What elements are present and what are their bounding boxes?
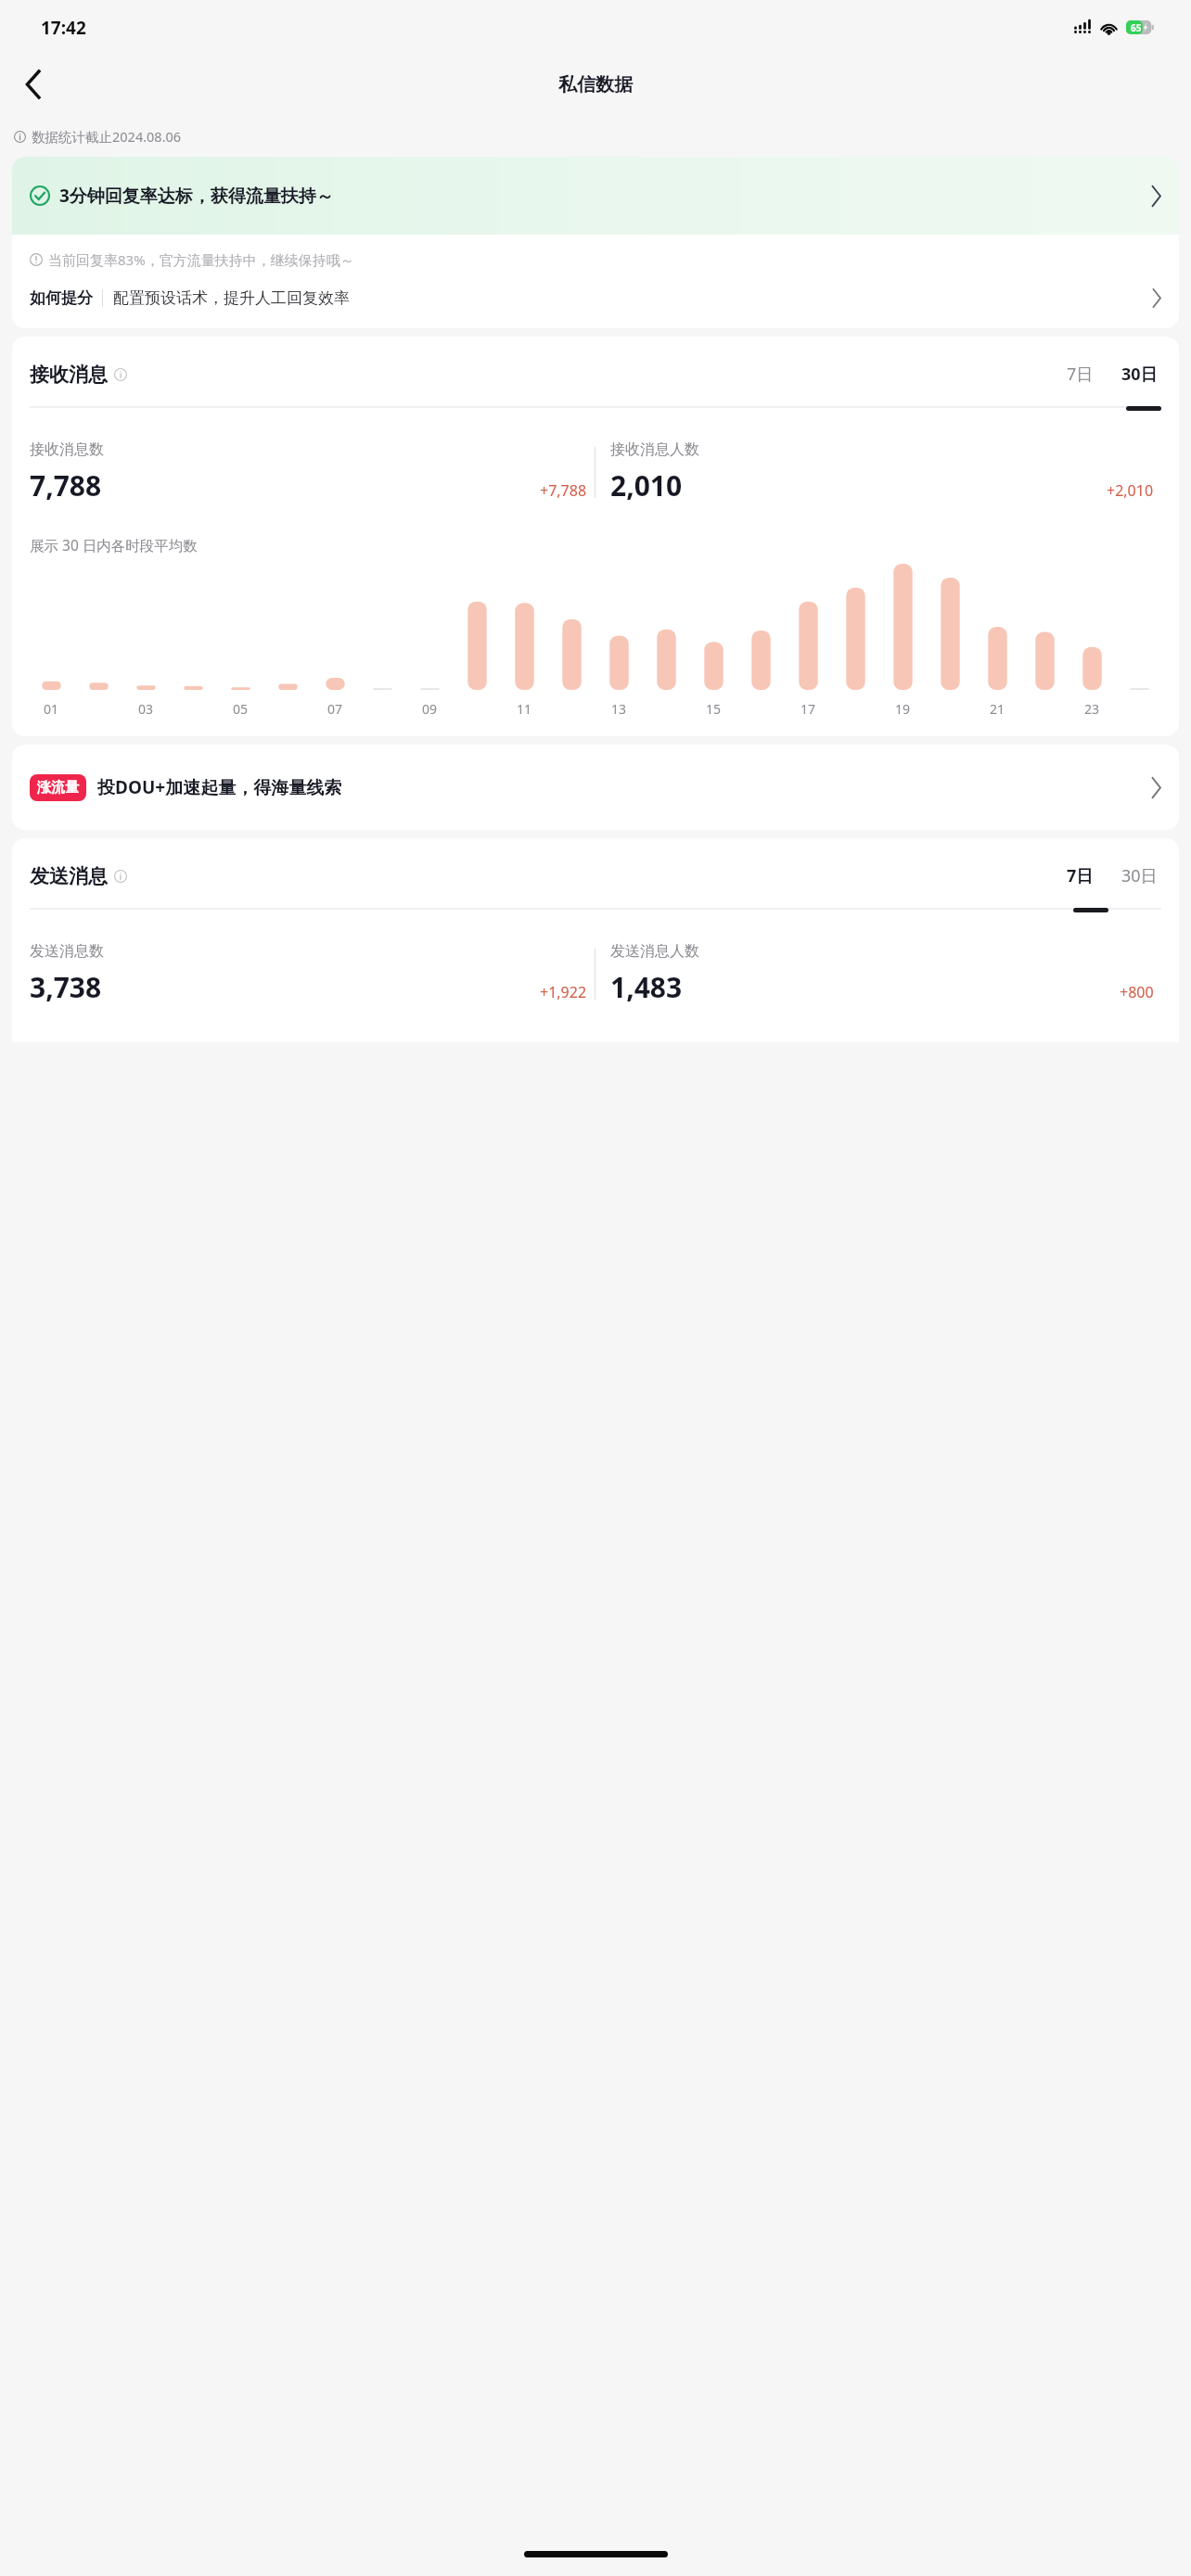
staticText: 19 (895, 700, 911, 718)
staticText: 1,483 (610, 968, 683, 1006)
staticText: 07 (327, 700, 343, 718)
staticText: 当前回复率83%，官方流量扶持中，继续保持哦～ (48, 250, 354, 269)
staticText: 发送消息 (30, 864, 108, 888)
staticText: 投DOU+加速起量，得海量线索 (97, 775, 342, 799)
staticText: 私信数据 (558, 73, 633, 96)
staticText: 05 (233, 700, 249, 718)
button[interactable]: 30日 (1118, 359, 1161, 389)
staticText: 2,010 (610, 466, 683, 504)
staticText: 如何提分 (30, 288, 93, 308)
staticText: 发送消息数 (30, 942, 104, 961)
staticText: 09 (422, 700, 438, 718)
staticText: 展示 30 日内各时段平均数 (30, 535, 198, 555)
staticText: 7日 (1067, 864, 1094, 887)
staticText: +800 (1120, 982, 1154, 1002)
staticText: 接收消息人数 (610, 440, 699, 459)
staticText: 3,738 (30, 968, 102, 1006)
staticText: +1,922 (540, 982, 587, 1002)
staticText: 数据统计截止2024.08.06 (32, 127, 182, 146)
button[interactable]: 7日 (1063, 359, 1097, 389)
staticText: 7,788 (30, 466, 102, 504)
button[interactable]: 涨流量 (12, 745, 1179, 830)
staticText: 发送消息人数 (610, 942, 699, 961)
staticText: 23 (1084, 700, 1100, 718)
button[interactable]: 30日 (1118, 861, 1161, 891)
staticText: 17 (800, 700, 816, 718)
staticText: +7,788 (540, 480, 587, 501)
staticText: 15 (706, 700, 722, 718)
staticText: 65 (1131, 21, 1142, 34)
button[interactable]: 如何提分 (30, 288, 1161, 308)
button[interactable]: 7日 (1063, 861, 1097, 891)
staticText: 配置预设话术，提升人工回复效率 (113, 288, 350, 308)
staticText: 11 (517, 700, 532, 718)
staticText: 接收消息 (30, 363, 108, 387)
staticText: 涨流量 (37, 779, 79, 797)
staticText: 21 (990, 700, 1005, 718)
staticText: 接收消息数 (30, 440, 104, 459)
staticText: 01 (44, 700, 59, 718)
staticText: 30日 (1121, 363, 1158, 386)
staticText: 03 (138, 700, 154, 718)
staticText: 13 (611, 700, 627, 718)
button[interactable]: 3分钟回复率达标，获得流量扶持～ (12, 157, 1179, 235)
staticText: +2,010 (1107, 480, 1154, 501)
staticText: 7日 (1067, 363, 1094, 386)
staticText: 3分钟回复率达标，获得流量扶持～ (59, 184, 334, 208)
staticText: 17:42 (41, 16, 86, 40)
button[interactable]: Back (13, 64, 54, 105)
staticText: 30日 (1121, 864, 1158, 887)
